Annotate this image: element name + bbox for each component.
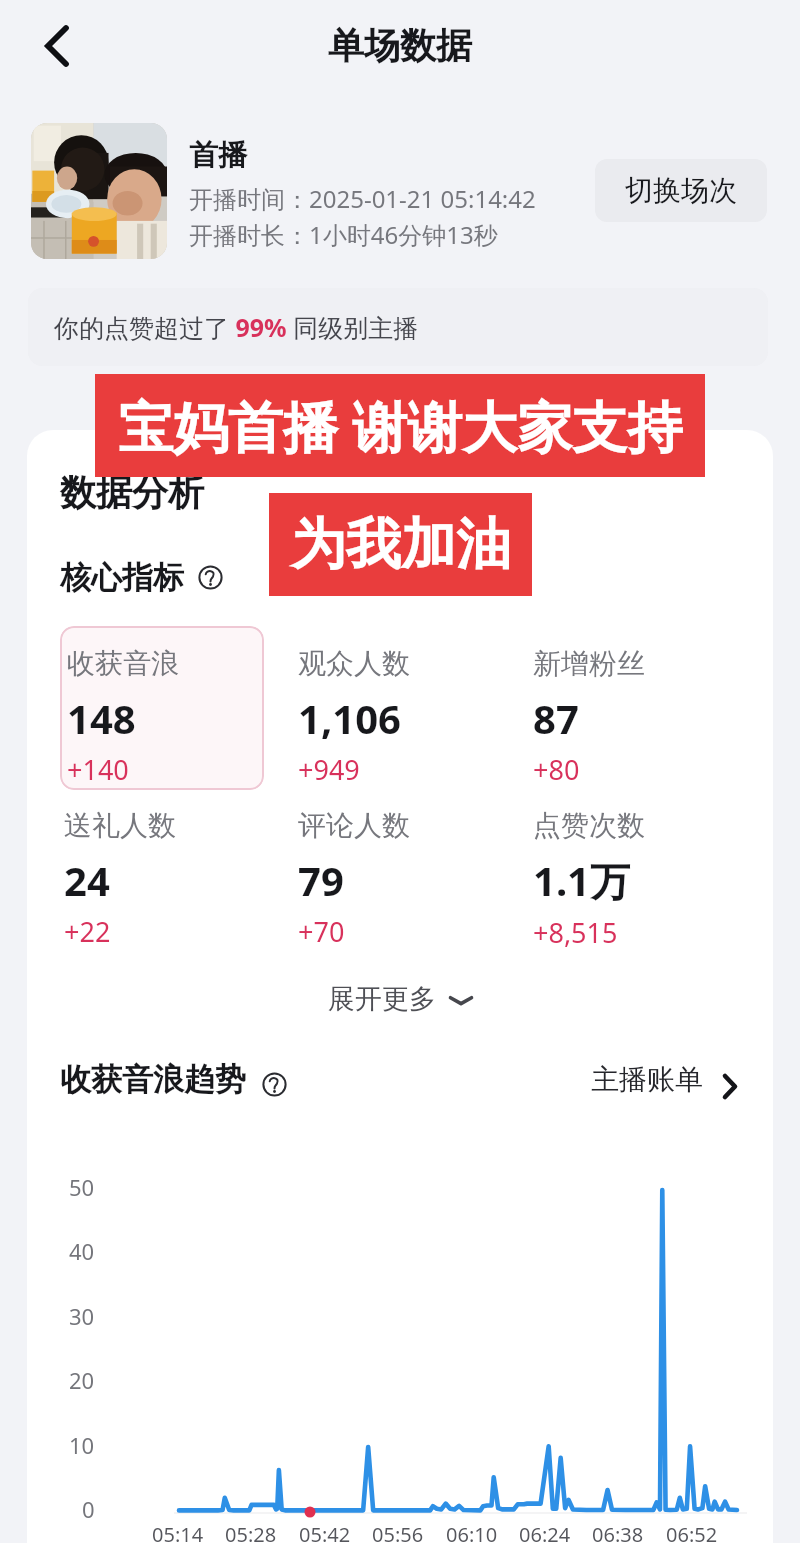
staticText: 评论人数 bbox=[298, 808, 410, 843]
staticText: +8,515 bbox=[533, 914, 618, 951]
staticText: 79 bbox=[298, 853, 344, 907]
button[interactable]: 收获音浪 bbox=[67, 646, 267, 788]
button[interactable]: 主播账单 bbox=[591, 1062, 748, 1097]
staticText: 送礼人数 bbox=[64, 808, 176, 843]
staticText: 06:38 bbox=[592, 1521, 644, 1543]
button[interactable]: Back bbox=[23, 13, 89, 79]
staticText: 30 bbox=[69, 1301, 95, 1331]
staticText: 0 bbox=[82, 1494, 95, 1524]
staticText: 148 bbox=[67, 691, 136, 745]
staticText: 20 bbox=[69, 1365, 95, 1395]
staticText: 50 bbox=[69, 1172, 95, 1202]
staticText: 05:14 bbox=[152, 1521, 204, 1543]
staticText: +949 bbox=[298, 751, 360, 788]
staticText: 新增粉丝 bbox=[533, 646, 645, 681]
button[interactable]: 切换场次 bbox=[595, 159, 767, 222]
staticText: 06:24 bbox=[519, 1521, 571, 1543]
button[interactable]: 展开更多 bbox=[328, 982, 474, 1016]
button[interactable] bbox=[60, 626, 264, 790]
staticText: 展开更多 bbox=[328, 982, 436, 1016]
staticText: 收获音浪趋势 bbox=[60, 1060, 246, 1099]
button[interactable]: 点赞次数 bbox=[533, 808, 733, 951]
staticText: 首播 bbox=[189, 137, 247, 174]
button[interactable]: 新增粉丝 bbox=[533, 646, 733, 788]
staticText: 06:10 bbox=[446, 1521, 498, 1543]
staticText: 87 bbox=[533, 691, 579, 745]
staticText: +22 bbox=[64, 913, 111, 950]
staticText: 观众人数 bbox=[298, 646, 410, 681]
staticText: 05:28 bbox=[225, 1521, 277, 1543]
button[interactable]: 送礼人数 bbox=[64, 808, 264, 950]
button[interactable]: 你的点赞超过了 99% 同级别主播 bbox=[28, 288, 768, 366]
staticText: 宝妈首播 谢谢大家支持 bbox=[118, 388, 683, 463]
staticText: 10 bbox=[69, 1430, 95, 1460]
staticText: 你的点赞超过了 99% 同级别主播 bbox=[54, 310, 419, 344]
staticText: 切换场次 bbox=[625, 173, 737, 208]
staticText: +80 bbox=[533, 751, 580, 788]
staticText: 开播时长：1小时46分钟13秒 bbox=[189, 218, 498, 251]
staticText: 40 bbox=[69, 1236, 95, 1266]
button[interactable]: 观众人数 bbox=[298, 646, 498, 788]
staticText: 单场数据 bbox=[328, 23, 472, 68]
staticText: 为我加油 bbox=[291, 510, 511, 579]
staticText: 开播时间：2025-01-21 05:14:42 bbox=[189, 182, 536, 215]
staticText: 核心指标 bbox=[60, 558, 184, 597]
staticText: 收获音浪 bbox=[67, 646, 179, 681]
staticText: 点赞次数 bbox=[533, 808, 645, 843]
staticText: +140 bbox=[67, 751, 129, 788]
button[interactable]: 评论人数 bbox=[298, 808, 498, 950]
staticText: 主播账单 bbox=[591, 1062, 703, 1097]
staticText: 1.1万 bbox=[533, 853, 630, 908]
staticText: +70 bbox=[298, 913, 345, 950]
staticText: 24 bbox=[64, 853, 110, 907]
staticText: 06:52 bbox=[666, 1521, 718, 1543]
staticText: 数据分析 bbox=[60, 470, 204, 515]
staticText: 05:42 bbox=[299, 1521, 351, 1543]
staticText: 1,106 bbox=[298, 691, 401, 745]
staticText: 05:56 bbox=[372, 1521, 424, 1543]
